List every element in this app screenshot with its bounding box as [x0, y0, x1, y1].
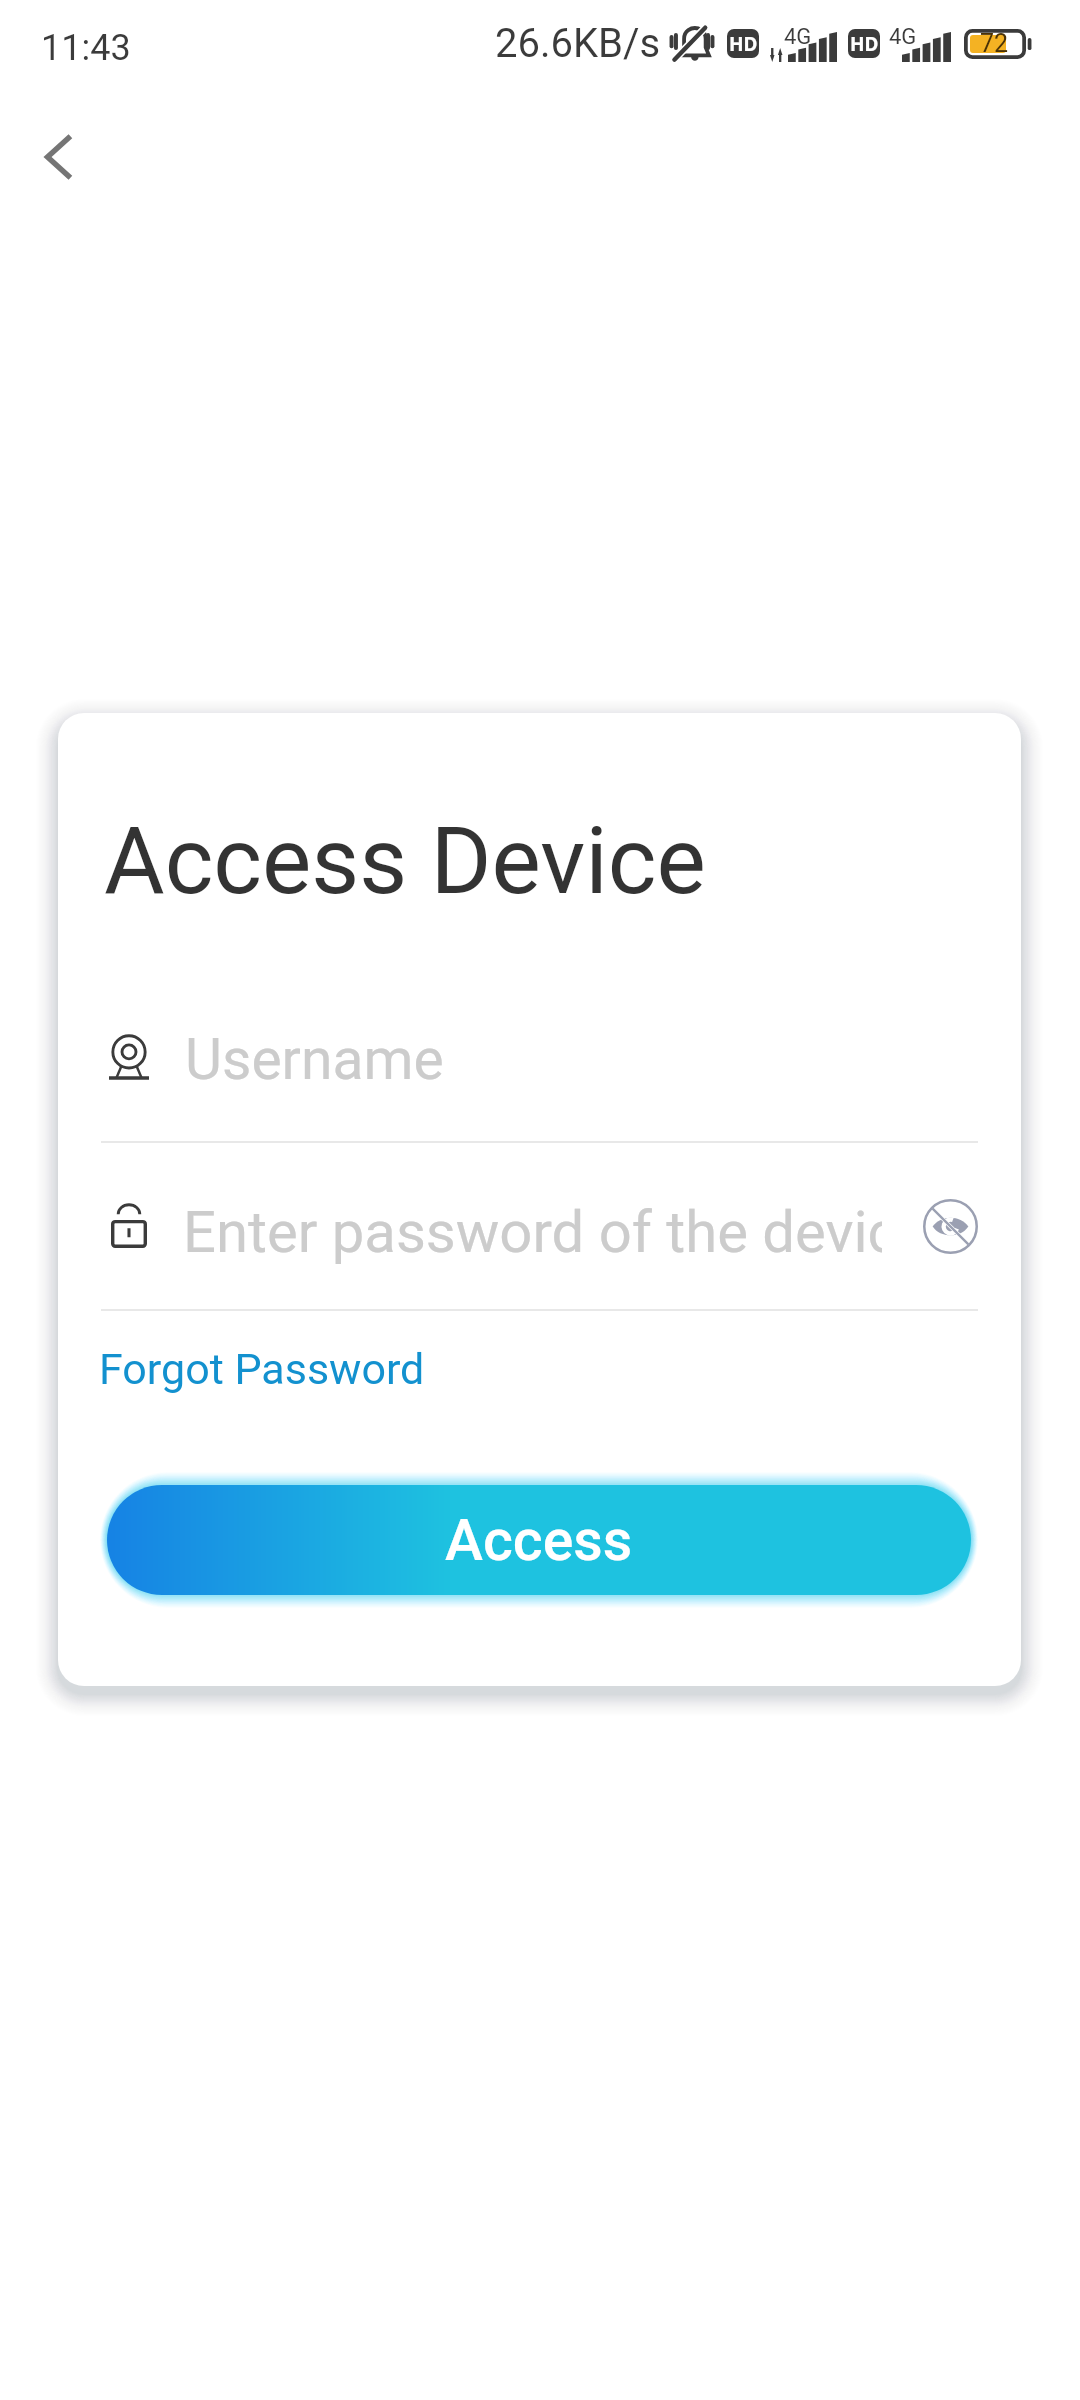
staticText: Enter password of the device [183, 1198, 882, 1266]
staticText: 26.6KB/s [495, 20, 661, 67]
button[interactable]: Access [107, 1485, 971, 1595]
staticText: 11:43 [41, 27, 131, 69]
staticText: HD [729, 31, 758, 57]
button[interactable]: Back [12, 109, 108, 205]
staticText: 72 [980, 29, 1009, 58]
staticText: 4G [889, 24, 917, 50]
button[interactable]: Show password [900, 1176, 1000, 1276]
staticText: Access [445, 1507, 633, 1574]
staticText: Forgot Password [99, 1344, 425, 1394]
staticText: Access Device [104, 807, 706, 916]
staticText: 4G [784, 24, 812, 50]
button[interactable]: Forgot Password [99, 1340, 425, 1398]
staticText: HD [850, 31, 879, 57]
staticText: Username [185, 1026, 444, 1093]
